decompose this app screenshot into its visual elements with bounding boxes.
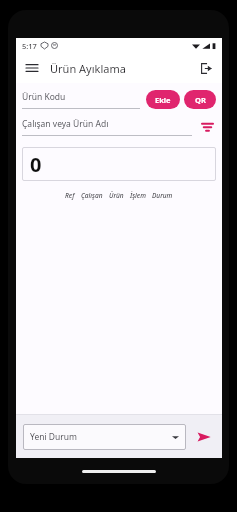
button[interactable]: Ekle	[146, 90, 180, 109]
button[interactable]: Yeni Durum	[23, 424, 186, 450]
button[interactable]: QR	[184, 90, 216, 109]
staticText: Ürün Kodu	[22, 91, 66, 103]
staticText: Çalışan veya Ürün Adı	[22, 118, 109, 130]
staticText: Ürün	[109, 191, 124, 200]
staticText: İşlem	[130, 191, 146, 200]
staticText: Yeni Durum	[30, 431, 78, 443]
button[interactable]: Filter	[198, 118, 216, 136]
staticText: Durum	[152, 191, 173, 200]
staticText: 5:17	[22, 41, 37, 51]
staticText: Ekle	[155, 95, 171, 105]
staticText: QR	[195, 95, 206, 105]
button[interactable]: Menu	[22, 58, 42, 78]
button[interactable]: 0	[22, 147, 216, 181]
button[interactable]: Send	[193, 426, 215, 448]
staticText: Ref	[65, 191, 75, 200]
staticText: 0	[30, 151, 42, 178]
button[interactable]: Logout	[196, 58, 216, 78]
staticText: Çalışan	[81, 191, 103, 200]
staticText: Ürün Ayıklama	[50, 61, 126, 76]
